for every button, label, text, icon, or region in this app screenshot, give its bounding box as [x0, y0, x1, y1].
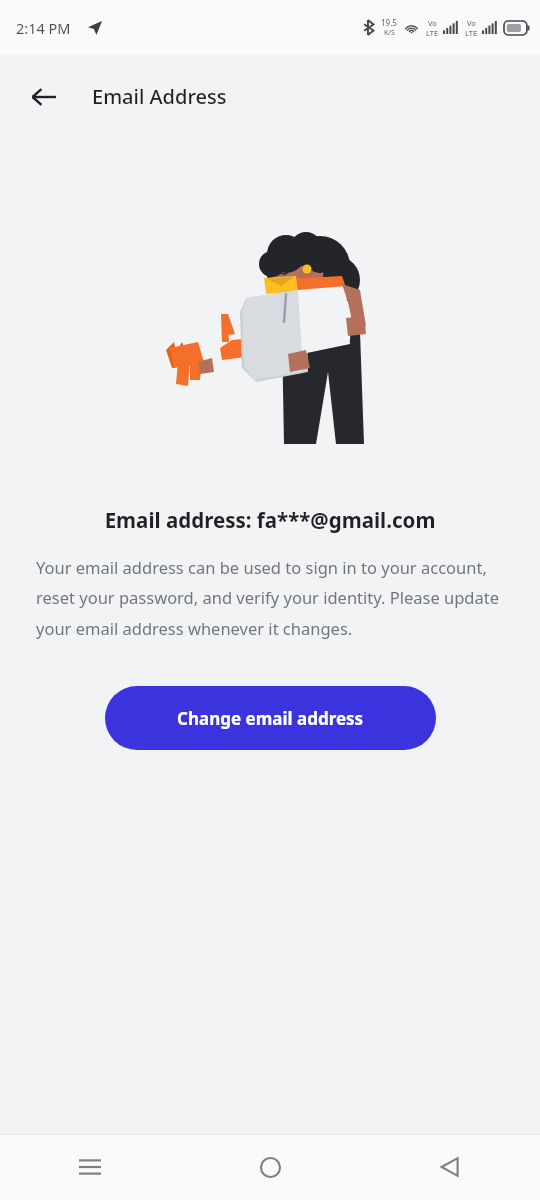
staticText: Vo	[467, 18, 476, 28]
staticText: 19.5	[381, 17, 397, 28]
staticText: Vo	[428, 18, 437, 28]
staticText: Email address: fa***@gmail.com	[20, 506, 520, 534]
button[interactable]: Home	[246, 1143, 294, 1191]
button[interactable]: Back	[20, 73, 68, 121]
button[interactable]: Change email address	[105, 686, 436, 750]
staticText: Email Address	[92, 83, 227, 110]
staticText: 2:14 PM	[16, 18, 71, 38]
staticText: Your email address can be used to sign i…	[36, 556, 506, 640]
button[interactable]: Back	[426, 1143, 474, 1191]
staticText: LTE	[465, 28, 478, 38]
staticText: LTE	[426, 28, 439, 38]
staticText: Change email address	[177, 707, 364, 730]
staticText: K/S	[384, 28, 395, 38]
button[interactable]: Recent apps	[66, 1143, 114, 1191]
